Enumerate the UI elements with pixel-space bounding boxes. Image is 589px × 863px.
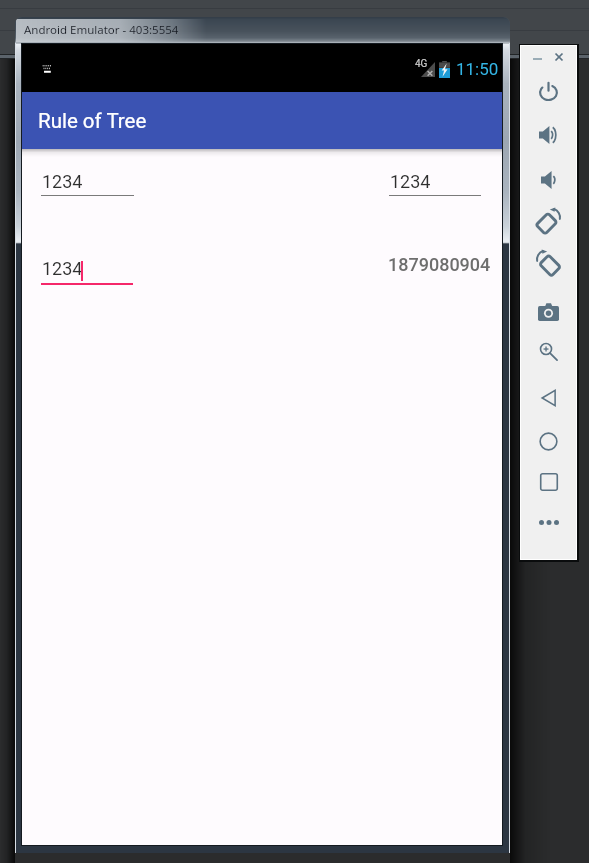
button[interactable]: Volume up bbox=[521, 114, 576, 156]
button[interactable]: Zoom bbox=[521, 330, 576, 372]
staticText: Android Emulator - 403:5554 bbox=[24, 22, 179, 38]
button[interactable]: Rotate left bbox=[521, 200, 576, 242]
button[interactable]: Close bbox=[547, 46, 571, 68]
staticText: 1234 bbox=[42, 258, 83, 279]
button[interactable]: 1234 bbox=[41, 171, 134, 196]
button[interactable]: Back bbox=[521, 377, 576, 419]
staticText: 11:50 bbox=[456, 59, 499, 79]
staticText: 1234 bbox=[390, 171, 431, 192]
staticText: Rule of Tree bbox=[38, 109, 147, 133]
staticText: 1879080904 bbox=[388, 254, 491, 275]
button[interactable]: Rotate right bbox=[521, 242, 576, 284]
button[interactable]: Minimize bbox=[525, 48, 549, 70]
button[interactable]: Power bbox=[521, 70, 576, 112]
staticText: 1234 bbox=[42, 171, 83, 192]
button[interactable]: 1234 bbox=[41, 258, 133, 285]
button[interactable]: More bbox=[521, 501, 576, 543]
button[interactable]: Volume down bbox=[521, 159, 576, 201]
button[interactable]: Screenshot bbox=[521, 291, 576, 333]
button[interactable]: 1234 bbox=[389, 171, 481, 196]
button[interactable]: Home bbox=[521, 420, 576, 462]
staticText: 4G bbox=[415, 58, 428, 70]
button[interactable]: Overview bbox=[521, 461, 576, 503]
